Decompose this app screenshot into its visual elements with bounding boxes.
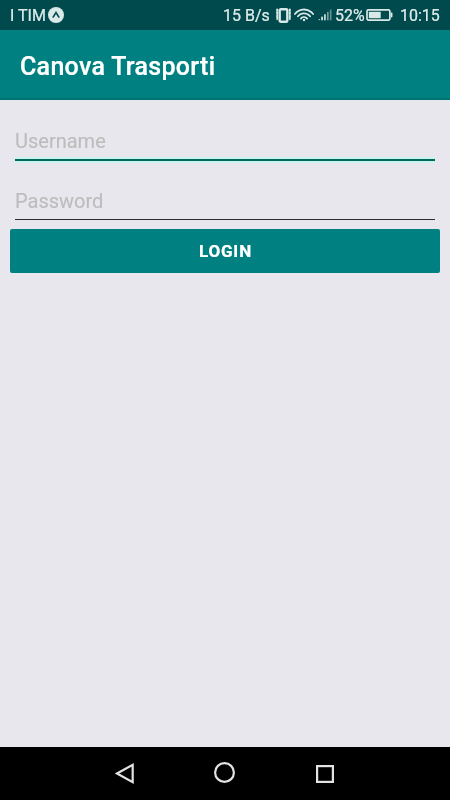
staticText: Username	[15, 129, 106, 152]
staticText: LOGIN	[199, 241, 252, 261]
staticText: 15 B/s	[223, 6, 270, 25]
button[interactable]: Back	[94, 747, 155, 800]
staticText: Password	[15, 189, 104, 212]
button[interactable]: Password	[15, 189, 435, 220]
button[interactable]: Home	[194, 747, 255, 800]
button[interactable]: Recent apps	[294, 747, 355, 800]
staticText: 10:15	[400, 6, 440, 25]
staticText: Canova Trasporti	[20, 52, 216, 81]
staticText: I TIM	[10, 6, 46, 25]
staticText: 52%	[335, 6, 365, 25]
button[interactable]: LOGIN	[10, 229, 440, 273]
button[interactable]: Username	[15, 129, 435, 165]
